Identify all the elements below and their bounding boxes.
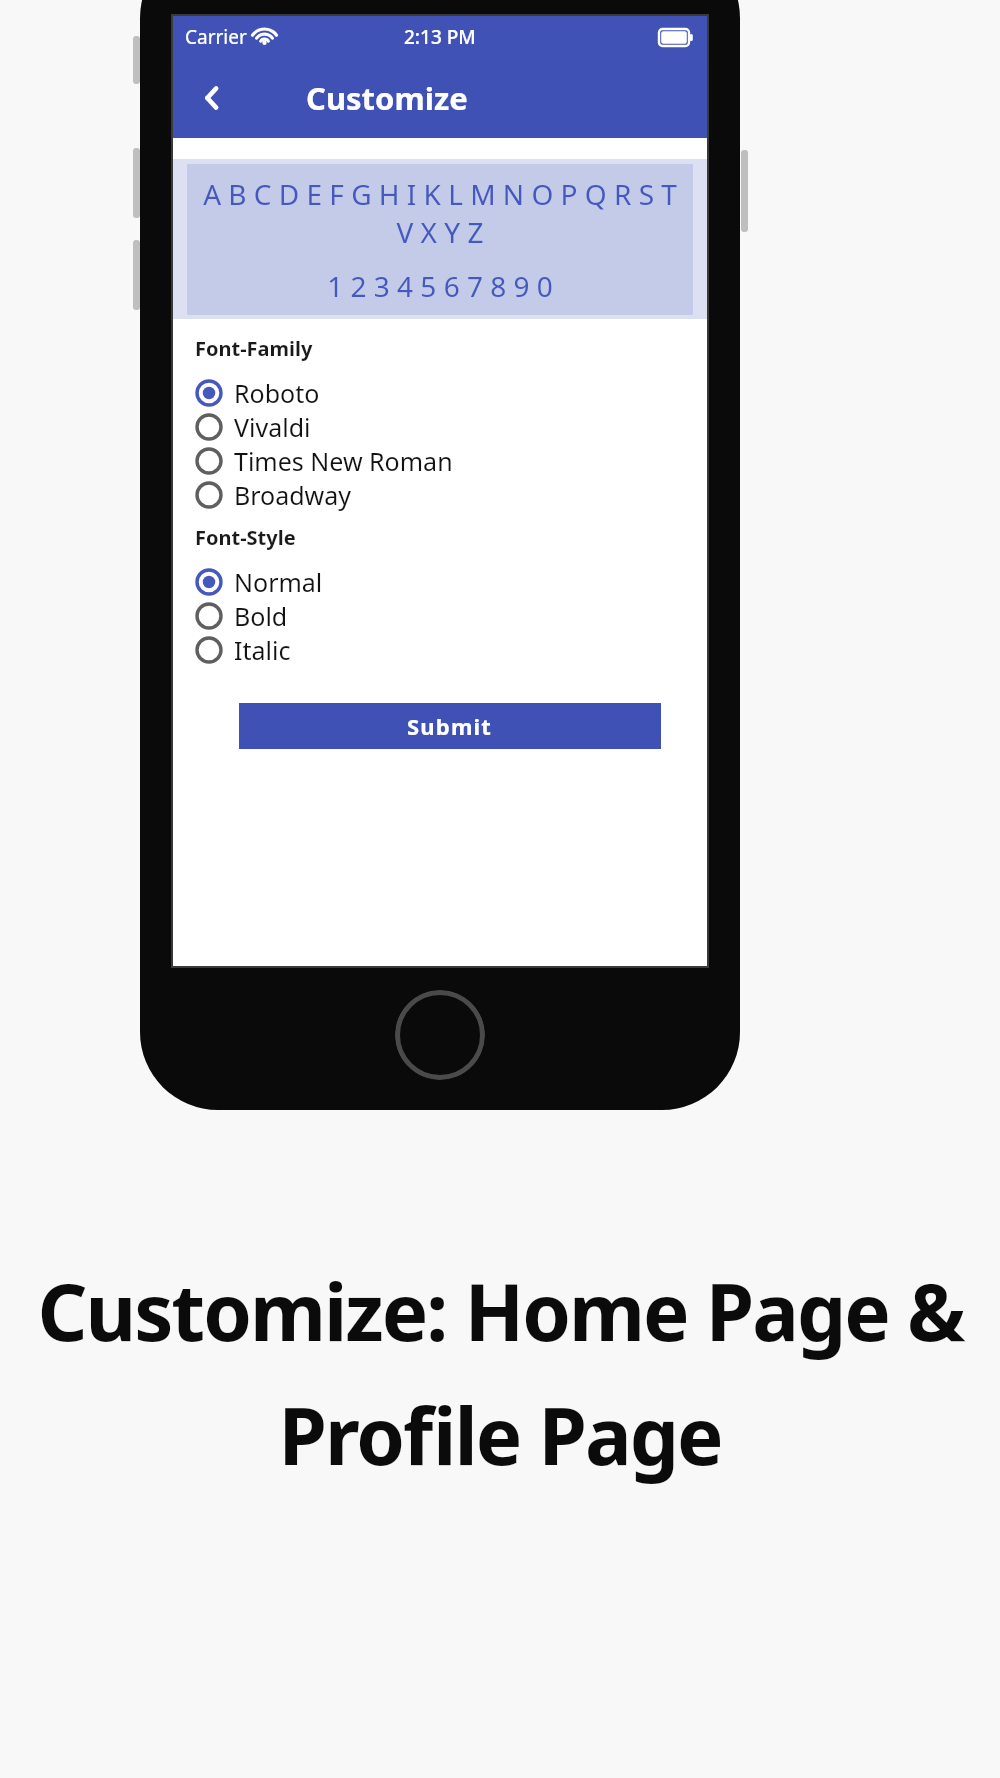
button[interactable]: Roboto	[173, 376, 707, 410]
button[interactable]: Submit	[239, 703, 661, 749]
staticText: Broadway	[234, 478, 352, 512]
button[interactable]: Normal	[173, 565, 707, 599]
button[interactable]: Italic	[173, 633, 707, 667]
staticText: Vivaldi	[234, 410, 311, 444]
staticText: Carrier	[185, 24, 247, 50]
staticText: Italic	[234, 633, 291, 667]
button[interactable]: Back	[185, 71, 239, 125]
staticText: Font-Family	[195, 335, 313, 362]
button[interactable]: Broadway	[173, 478, 707, 512]
staticText: Customize	[306, 77, 468, 119]
button[interactable]: Times New Roman	[173, 444, 707, 478]
staticText: Roboto	[234, 376, 320, 410]
staticText: Normal	[234, 565, 323, 599]
staticText: A B C D E F G H I K L M N O P Q R S T V …	[195, 175, 685, 251]
staticText: Profile Page	[278, 1382, 722, 1488]
staticText: Customize: Home Page &	[37, 1258, 964, 1364]
staticText: 2:13 PM	[404, 24, 476, 50]
button[interactable]: Vivaldi	[173, 410, 707, 444]
staticText: Bold	[234, 599, 288, 633]
staticText: Font-Style	[195, 524, 296, 551]
staticText: Submit	[407, 711, 493, 741]
button[interactable]: Bold	[173, 599, 707, 633]
staticText: Times New Roman	[234, 444, 453, 478]
staticText: 1 2 3 4 5 6 7 8 9 0	[327, 267, 553, 305]
